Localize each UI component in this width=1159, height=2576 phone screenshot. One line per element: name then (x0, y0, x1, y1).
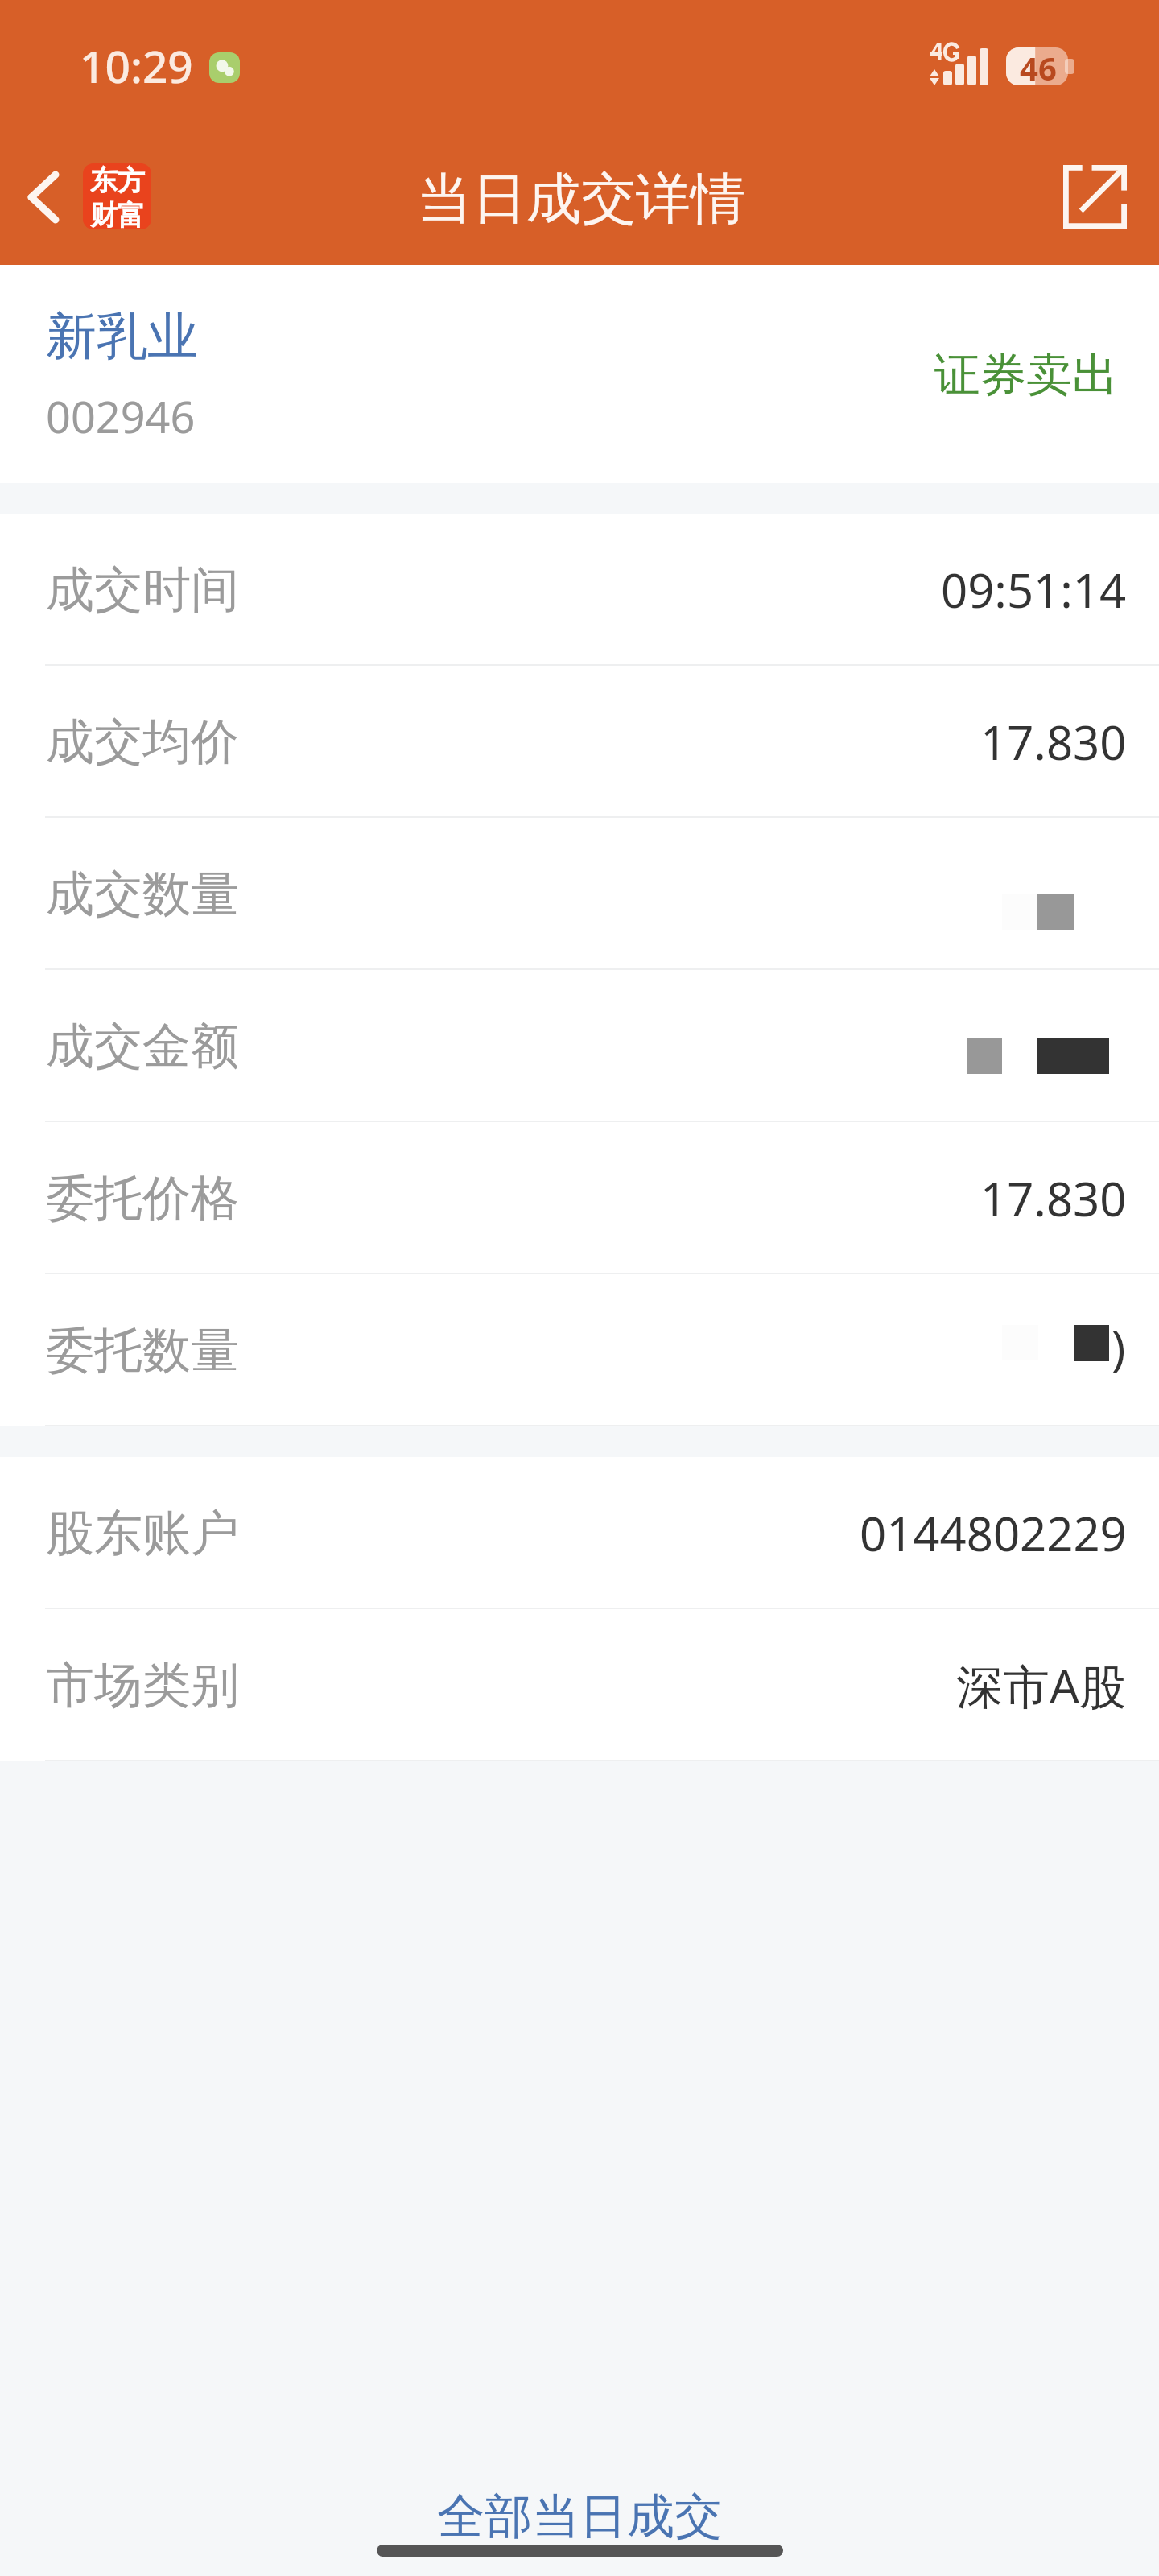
staticText: 当日成交详情 (417, 165, 745, 234)
button[interactable]: Back (0, 129, 87, 265)
button[interactable]: 全部当日成交 (0, 2450, 1159, 2545)
staticText: 全部当日成交 (437, 2487, 722, 2546)
button[interactable]: 成交数量 (0, 818, 1159, 970)
staticText: 委托数量 (46, 1320, 239, 1381)
button[interactable]: 成交时间 (0, 514, 1159, 666)
button[interactable]: 成交金额 (0, 970, 1159, 1122)
button[interactable]: 市场类别 (0, 1609, 1159, 1761)
staticText: 证券卖出 (934, 346, 1118, 404)
button[interactable]: 委托价格 (0, 1122, 1159, 1274)
staticText: 成交金额 (46, 1016, 239, 1077)
staticText: 0144802229 (860, 1501, 1127, 1565)
button[interactable]: 委托数量 (0, 1274, 1159, 1426)
button[interactable]: 成交均价 (0, 666, 1159, 818)
staticText: 市场类别 (46, 1655, 239, 1716)
staticText: 46 (1020, 46, 1057, 84)
staticText: 002946 (46, 386, 196, 446)
staticText: 09:51:14 (941, 558, 1127, 621)
staticText: 新乳业 (46, 304, 198, 368)
staticText: 东方 (90, 163, 145, 198)
button[interactable]: 新乳业 (0, 265, 1159, 483)
staticText: 股东账户 (46, 1503, 239, 1564)
staticText: 成交数量 (46, 864, 239, 925)
staticText: 17.830 (980, 1166, 1127, 1230)
button[interactable]: Share (1046, 148, 1143, 245)
staticText: 财富 (90, 198, 145, 229)
staticText: 成交均价 (46, 712, 239, 773)
button[interactable]: 股东账户 (0, 1457, 1159, 1609)
staticText: 10:29 (80, 35, 193, 96)
staticText: 委托价格 (46, 1168, 239, 1229)
staticText: 成交时间 (46, 559, 239, 621)
staticText: 深市A股 (956, 1653, 1127, 1717)
staticText: ) (1112, 1315, 1126, 1379)
staticText: 17.830 (980, 710, 1127, 774)
